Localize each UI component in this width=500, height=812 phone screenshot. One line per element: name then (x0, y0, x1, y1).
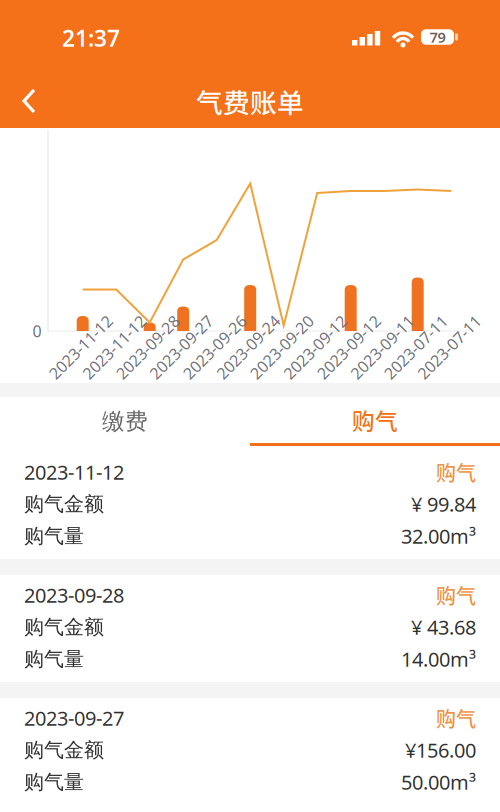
staticText: 购气 (436, 457, 476, 486)
staticText: 2023-09-26 (174, 336, 256, 358)
button[interactable]: Back (22, 89, 36, 113)
staticText: 气费账单 (196, 82, 304, 120)
staticText: 2023-09-27 (24, 705, 124, 731)
button[interactable]: 购气 (250, 397, 500, 446)
staticText: 2023-09-24 (207, 336, 289, 358)
staticText: ¥156.00 (405, 737, 476, 763)
button[interactable]: 缴费 (0, 397, 250, 446)
staticText: 购气量 (24, 524, 84, 548)
staticText: 缴费 (102, 408, 148, 435)
staticText: 79 (429, 27, 445, 47)
staticText: 2023-09-27 (140, 336, 222, 358)
staticText: 购气金额 (24, 492, 104, 516)
staticText: 2023-07-11 (408, 336, 490, 358)
staticText: ¥ 43.68 (411, 614, 476, 640)
staticText: 2023-09-28 (24, 582, 124, 608)
staticText: 2023-09-12 (274, 336, 356, 358)
staticText: 购气 (436, 580, 476, 609)
staticText: 购气金额 (24, 738, 104, 762)
staticText: 32.00m³ (401, 523, 476, 549)
staticText: ¥ 99.84 (411, 491, 476, 517)
staticText: 2023-11-12 (40, 336, 122, 358)
staticText: 2023-11-12 (73, 336, 155, 358)
staticText: 购气量 (24, 770, 84, 794)
staticText: 2023-09-11 (341, 336, 423, 358)
staticText: 21:37 (62, 23, 120, 53)
staticText: 购气 (352, 404, 398, 436)
staticText: 2023-09-20 (241, 336, 323, 358)
staticText: 2023-09-28 (107, 336, 189, 358)
staticText: 50.00m³ (401, 769, 476, 795)
staticText: 购气 (436, 703, 476, 732)
staticText: 购气金额 (24, 615, 104, 639)
staticText: 0 (32, 320, 41, 342)
staticText: 2023-11-12 (24, 459, 124, 485)
staticText: 14.00m³ (401, 646, 476, 672)
staticText: 2023-07-11 (375, 336, 457, 358)
staticText: 2023-09-12 (308, 336, 390, 358)
staticText: 购气量 (24, 647, 84, 671)
